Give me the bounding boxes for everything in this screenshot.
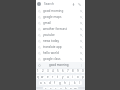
- staticText: p: [82, 75, 84, 79]
- button[interactable]: o: [75, 75, 80, 79]
- button[interactable]: 2: [40, 69, 45, 73]
- staticText: y: [62, 75, 64, 79]
- staticText: translate app: [43, 45, 62, 49]
- button[interactable]: weather forecast: [36, 26, 85, 32]
- staticText: weather forecast: [43, 27, 67, 31]
- staticText: 8: [72, 69, 74, 73]
- button[interactable]: 0: [80, 69, 85, 73]
- button[interactable]: google class: [36, 56, 85, 62]
- other: Emoji: [38, 64, 41, 67]
- button[interactable]: j: [67, 81, 72, 85]
- staticText: k: [74, 81, 76, 85]
- button[interactable]: u: [65, 75, 70, 79]
- button[interactable]: 9: [75, 69, 80, 73]
- staticText: n: [70, 87, 72, 89]
- button[interactable]: 8: [70, 69, 75, 73]
- staticText: m: [74, 87, 77, 89]
- staticText: v: [60, 87, 62, 89]
- button[interactable]: 6: [60, 69, 65, 73]
- button[interactable]: 1: [36, 69, 40, 73]
- staticText: z: [45, 87, 47, 89]
- staticText: q: [37, 75, 39, 79]
- button[interactable]: a: [39, 81, 43, 85]
- staticText: 3: [47, 69, 49, 73]
- staticText: h: [64, 81, 66, 85]
- staticText: e: [47, 75, 49, 79]
- button[interactable]: 5: [55, 69, 60, 73]
- button[interactable]: n: [68, 87, 73, 89]
- staticText: i: [72, 75, 73, 79]
- button[interactable]: c: [53, 87, 58, 89]
- staticText: d: [49, 81, 51, 85]
- button[interactable]: 7: [65, 69, 70, 73]
- button[interactable]: w: [40, 75, 45, 79]
- button[interactable]: m: [73, 87, 78, 89]
- staticText: 7: [67, 69, 69, 73]
- button[interactable]: Voice search: [71, 2, 75, 6]
- staticText: s: [44, 81, 46, 85]
- staticText: b: [65, 87, 67, 89]
- staticText: 0: [82, 69, 84, 73]
- other: More options: [80, 64, 83, 67]
- staticText: google maps: [43, 15, 62, 19]
- button[interactable]: l: [77, 81, 82, 85]
- staticText: Search: [44, 2, 54, 6]
- button[interactable]: f: [52, 81, 57, 85]
- button[interactable]: t: [55, 75, 60, 79]
- button[interactable]: g: [57, 81, 62, 85]
- staticText: news today: [43, 39, 60, 43]
- staticText: g: [59, 81, 61, 85]
- staticText: 1: [37, 69, 39, 73]
- button[interactable]: p: [80, 75, 85, 79]
- staticText: good morning: [43, 9, 64, 13]
- button[interactable]: youtube: [36, 32, 85, 38]
- button[interactable]: 4: [50, 69, 55, 73]
- staticText: good morning: [49, 63, 69, 67]
- staticText: youtube: [43, 33, 55, 37]
- staticText: r: [52, 75, 54, 79]
- button[interactable]: good morning: [36, 8, 85, 14]
- staticText: u: [67, 75, 69, 79]
- staticText: 6: [62, 69, 64, 73]
- button[interactable]: news today: [36, 38, 85, 44]
- button[interactable]: e: [45, 75, 50, 79]
- button[interactable]: q: [36, 75, 40, 79]
- button[interactable]: 3: [45, 69, 50, 73]
- staticText: hello world: [43, 51, 59, 55]
- staticText: x: [50, 87, 52, 89]
- button[interactable]: gmail: [36, 20, 85, 26]
- button[interactable]: r: [50, 75, 55, 79]
- button[interactable]: google maps: [36, 14, 85, 20]
- button[interactable]: i: [70, 75, 75, 79]
- staticText: google class: [43, 57, 61, 61]
- staticText: 4: [52, 69, 54, 73]
- staticText: 5: [57, 69, 59, 73]
- button[interactable]: z: [43, 87, 48, 89]
- staticText: a: [40, 81, 42, 85]
- button[interactable]: x: [48, 87, 53, 89]
- staticText: t: [57, 75, 59, 79]
- staticText: o: [77, 75, 79, 79]
- button[interactable]: hello world: [36, 50, 85, 56]
- button[interactable]: Search: [36, 0, 85, 8]
- staticText: gmail: [43, 21, 51, 25]
- button[interactable]: s: [43, 81, 47, 85]
- staticText: l: [79, 81, 80, 85]
- button[interactable]: translate app: [36, 44, 85, 50]
- button[interactable]: v: [58, 87, 63, 89]
- staticText: c: [55, 87, 57, 89]
- staticText: f: [54, 81, 55, 85]
- button[interactable]: h: [62, 81, 67, 85]
- button[interactable]: d: [47, 81, 52, 85]
- staticText: j: [69, 81, 70, 85]
- staticText: w: [41, 75, 44, 79]
- staticText: 9: [77, 69, 79, 73]
- button[interactable]: b: [63, 87, 68, 89]
- staticText: 2: [42, 69, 44, 73]
- button[interactable]: k: [72, 81, 77, 85]
- button[interactable]: y: [60, 75, 65, 79]
- button[interactable]: Google Lens: [77, 2, 81, 6]
